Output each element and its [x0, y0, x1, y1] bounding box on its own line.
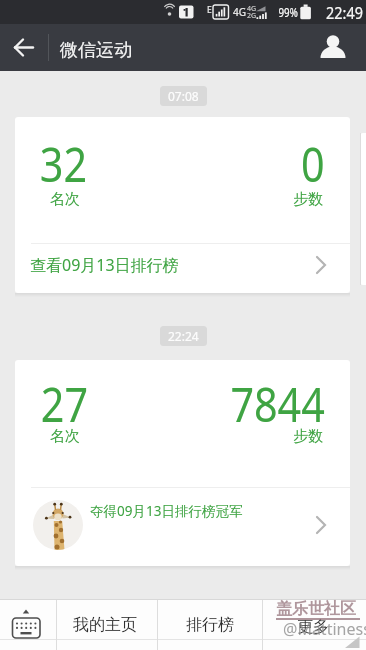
staticText: 32	[40, 131, 87, 196]
button[interactable]	[15, 488, 350, 566]
button[interactable]	[15, 244, 350, 293]
button[interactable]	[0, 599, 56, 650]
staticText: 排行榜	[186, 615, 234, 635]
staticText: 名次	[50, 190, 80, 209]
staticText: 0	[301, 131, 325, 196]
staticText: 步数	[293, 427, 323, 446]
staticText: 步数	[293, 190, 323, 209]
staticText: 7844	[230, 371, 325, 436]
staticText: 查看09月13日排行榜	[30, 254, 179, 276]
staticText: 22:49	[326, 2, 363, 22]
staticText: 4G	[233, 5, 246, 19]
staticText: 27	[41, 371, 88, 436]
staticText: @Mattiness	[283, 618, 366, 640]
staticText: E	[207, 4, 212, 16]
staticText: 我的主页	[73, 615, 137, 635]
button[interactable]	[15, 117, 350, 293]
staticText: 名次	[50, 427, 80, 446]
staticText: 夺得09月13日排行榜冠军	[90, 502, 243, 520]
staticText: 07:08	[168, 88, 199, 104]
staticText: 盖乐世社区	[276, 599, 356, 619]
button[interactable]	[305, 24, 361, 71]
staticText: 99%	[278, 4, 298, 21]
button[interactable]: 更多	[263, 599, 366, 650]
button[interactable]	[0, 24, 48, 71]
staticText: 22:24	[168, 328, 199, 344]
button[interactable]	[15, 360, 350, 566]
button[interactable]: 我的主页	[57, 599, 157, 650]
staticText: 更多	[297, 617, 329, 637]
staticText: 2G	[247, 11, 257, 20]
staticText: 4G	[247, 4, 257, 13]
button[interactable]: 排行榜	[158, 599, 262, 650]
staticText: 微信运动	[60, 39, 132, 62]
